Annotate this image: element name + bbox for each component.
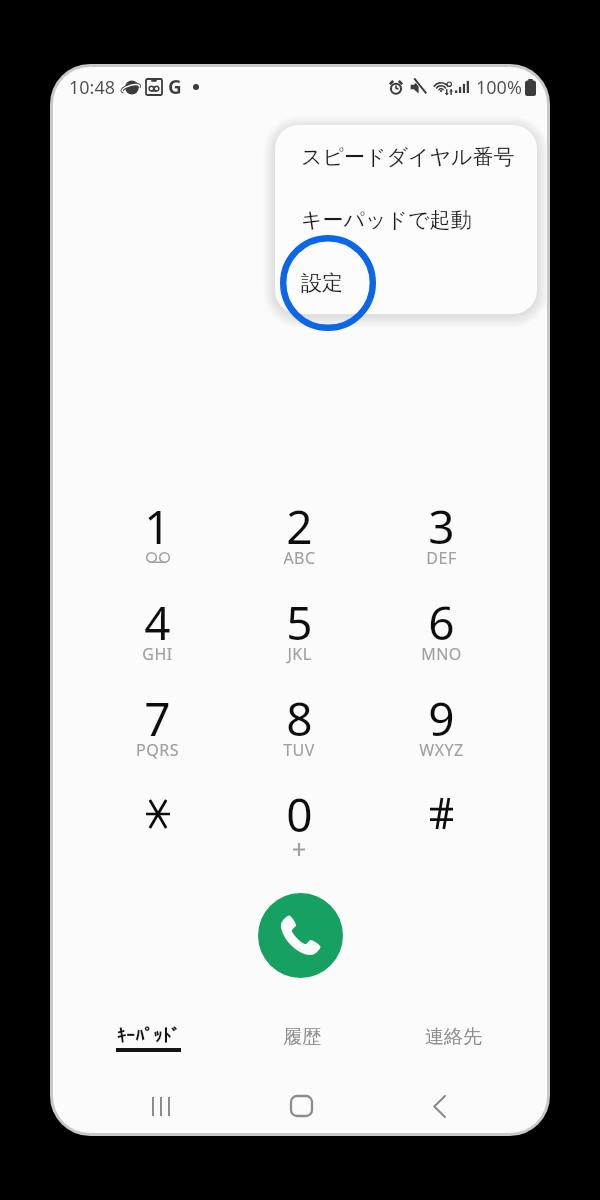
staticText: 10:48 bbox=[69, 75, 116, 100]
button[interactable]: 履歴 bbox=[242, 1011, 362, 1063]
staticText: 連絡先 bbox=[425, 1025, 482, 1049]
button[interactable] bbox=[370, 783, 512, 879]
button[interactable]: 7 bbox=[87, 687, 228, 783]
button[interactable]: 0 bbox=[228, 783, 370, 879]
staticText: 5 bbox=[286, 591, 313, 643]
button[interactable]: Home bbox=[278, 1083, 324, 1129]
staticText: DEF bbox=[426, 547, 457, 569]
staticText: 6 bbox=[428, 591, 455, 643]
staticText: スピードダイヤル番号 bbox=[301, 144, 515, 170]
staticText: G bbox=[168, 74, 182, 100]
staticText: PQRS bbox=[136, 739, 179, 761]
staticText: ABC bbox=[283, 547, 316, 569]
button[interactable]: 6 bbox=[370, 591, 512, 687]
button[interactable]: Back bbox=[416, 1083, 462, 1129]
staticText: 2 bbox=[286, 495, 313, 547]
staticText: 9 bbox=[428, 687, 455, 739]
staticText: 4 bbox=[144, 591, 171, 643]
staticText: ｷｰﾊﾟｯﾄﾞ bbox=[117, 1026, 180, 1044]
staticText: 履歴 bbox=[283, 1025, 321, 1049]
button[interactable]: 設定 bbox=[275, 251, 537, 314]
button[interactable]: Call bbox=[258, 893, 343, 978]
staticText: 0 bbox=[286, 783, 313, 835]
staticText: TUV bbox=[283, 739, 315, 761]
button[interactable]: 1 bbox=[87, 495, 228, 591]
staticText: キーパッドで起動 bbox=[301, 207, 472, 233]
staticText: GHI bbox=[142, 643, 173, 665]
staticText: 1 bbox=[144, 495, 171, 547]
button[interactable]: 8 bbox=[228, 687, 370, 783]
button[interactable]: ｷｰﾊﾟｯﾄﾞ bbox=[88, 1011, 208, 1063]
staticText: 7 bbox=[144, 687, 171, 739]
staticText: MNO bbox=[421, 643, 462, 665]
button[interactable]: 3 bbox=[370, 495, 512, 591]
staticText: 設定 bbox=[301, 270, 343, 296]
button[interactable]: 連絡先 bbox=[393, 1011, 513, 1063]
button[interactable]: 2 bbox=[228, 495, 370, 591]
button[interactable]: スピードダイヤル番号 bbox=[275, 125, 537, 188]
button[interactable]: キーパッドで起動 bbox=[275, 188, 537, 251]
staticText: 100% bbox=[476, 75, 522, 100]
button[interactable]: 5 bbox=[228, 591, 370, 687]
button[interactable]: 4 bbox=[87, 591, 228, 687]
button[interactable]: Recents bbox=[138, 1083, 184, 1129]
staticText: JKL bbox=[287, 643, 312, 665]
staticText: 8 bbox=[286, 687, 313, 739]
staticText: 3 bbox=[428, 495, 455, 547]
button[interactable] bbox=[87, 783, 228, 879]
button[interactable]: 9 bbox=[370, 687, 512, 783]
staticText: WXYZ bbox=[419, 739, 464, 761]
